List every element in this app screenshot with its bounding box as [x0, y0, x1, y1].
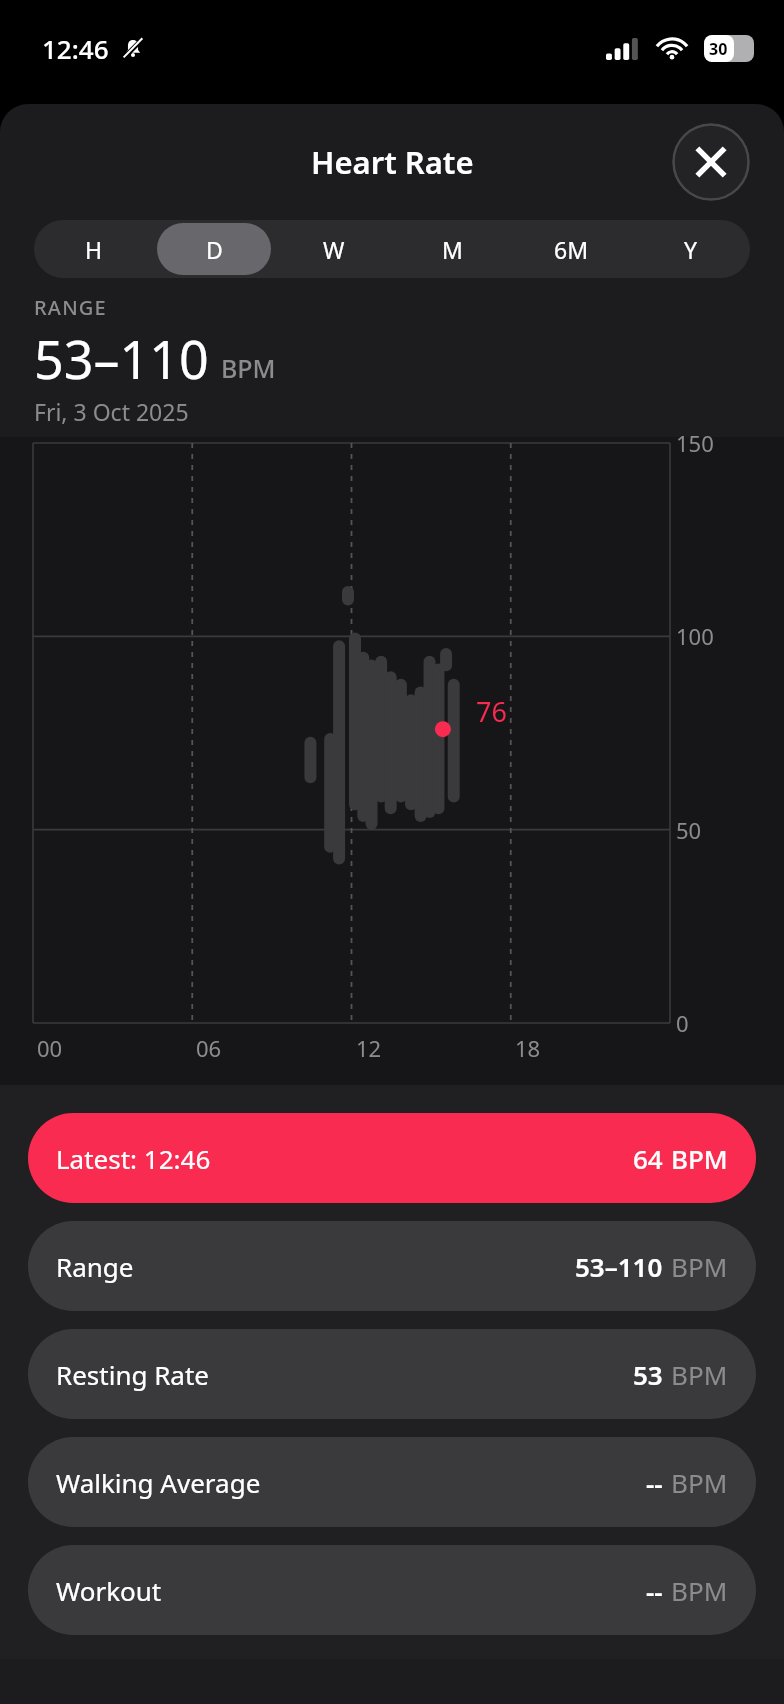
staticText: BPM — [671, 1465, 728, 1500]
button[interactable]: M — [396, 223, 509, 275]
staticText: Walking Average — [56, 1465, 261, 1500]
staticText: BPM — [671, 1249, 728, 1284]
staticText: 0 — [676, 1008, 689, 1038]
staticText: Latest: 12:46 — [56, 1141, 211, 1176]
staticText: BPM — [221, 351, 276, 385]
staticText: Range — [56, 1249, 134, 1284]
staticText: 12:46 — [42, 31, 109, 66]
staticText: 53–110 — [34, 323, 209, 394]
staticText: 150 — [676, 428, 714, 458]
staticText: Fri, 3 Oct 2025 — [34, 396, 189, 427]
button[interactable]: 6M — [515, 223, 628, 275]
button[interactable]: W — [277, 223, 390, 275]
staticText: Y — [684, 234, 698, 265]
staticText: 00 — [37, 1033, 63, 1063]
staticText: 18 — [515, 1033, 541, 1063]
staticText: Heart Rate — [311, 141, 474, 183]
staticText: BPM — [671, 1573, 728, 1608]
staticText: M — [442, 234, 463, 265]
staticText: -- — [646, 1573, 663, 1608]
staticText: Resting Rate — [56, 1357, 210, 1392]
button[interactable]: Workout — [28, 1545, 756, 1635]
button[interactable]: Walking Average — [28, 1437, 756, 1527]
staticText: 76 — [476, 693, 507, 730]
button[interactable]: Close — [672, 123, 750, 201]
staticText: 06 — [196, 1033, 222, 1063]
staticText: 100 — [676, 621, 714, 651]
button[interactable]: H — [37, 223, 151, 275]
staticText: 50 — [676, 815, 702, 845]
staticText: 12 — [356, 1033, 382, 1063]
staticText: 64 — [633, 1141, 663, 1176]
staticText: 53–110 — [575, 1249, 663, 1284]
staticText: 6M — [554, 234, 589, 265]
button[interactable]: Resting Rate — [28, 1329, 756, 1419]
staticText: 53 — [633, 1357, 663, 1392]
staticText: 30 — [709, 38, 728, 60]
staticText: D — [206, 234, 223, 265]
staticText: W — [323, 234, 345, 265]
button[interactable]: Range — [28, 1221, 756, 1311]
staticText: BPM — [671, 1357, 728, 1392]
button[interactable]: Latest: 12:46 — [28, 1113, 756, 1203]
staticText: Workout — [56, 1573, 162, 1608]
staticText: BPM — [671, 1141, 728, 1176]
button[interactable]: Y — [634, 223, 747, 275]
staticText: H — [85, 234, 103, 265]
staticText: -- — [646, 1465, 663, 1500]
staticText: RANGE — [34, 294, 107, 321]
button[interactable]: D — [157, 223, 271, 275]
